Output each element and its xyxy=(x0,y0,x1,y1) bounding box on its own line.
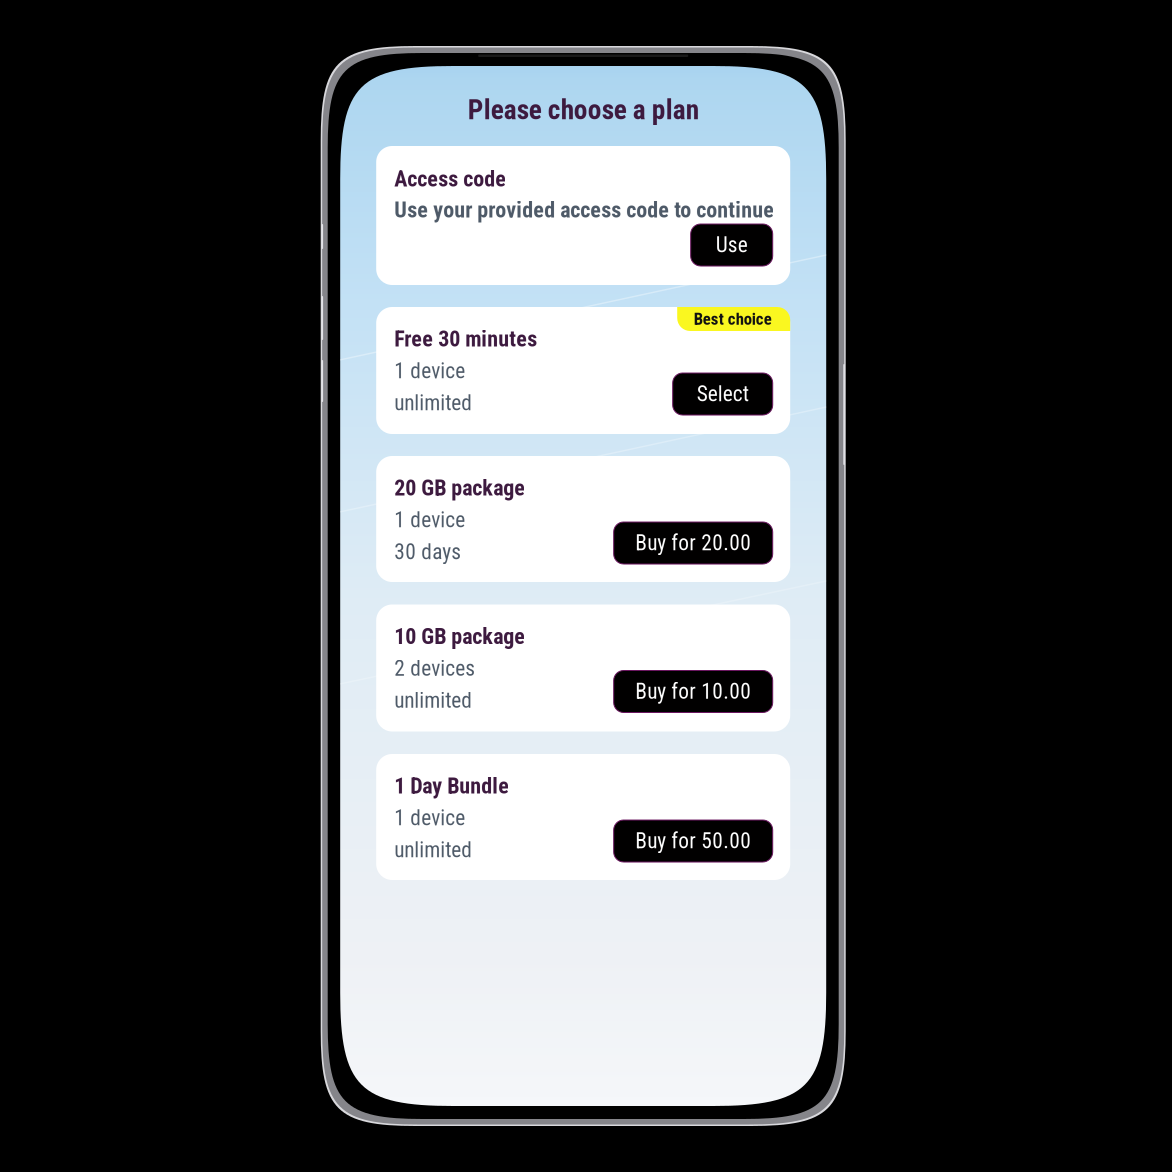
staticText: Use your provided access code to continu… xyxy=(394,197,774,223)
staticText: Buy for 10.00 xyxy=(635,679,751,704)
staticText: 20 GB package xyxy=(394,475,525,501)
button[interactable]: Use xyxy=(691,224,773,266)
staticText: Best choice xyxy=(694,309,772,329)
button[interactable]: Buy for 20.00 xyxy=(614,522,773,564)
staticText: unlimited xyxy=(394,688,472,713)
button[interactable]: Select xyxy=(673,373,773,415)
staticText: Use xyxy=(716,232,748,257)
button[interactable]: Buy for 10.00 xyxy=(614,670,773,712)
button[interactable]: Buy for 50.00 xyxy=(614,820,773,862)
staticText: 2 devices xyxy=(394,656,475,681)
staticText: Buy for 50.00 xyxy=(635,828,751,853)
staticText: Select xyxy=(697,381,749,406)
staticText: Access code xyxy=(394,166,506,192)
staticText: 1 device xyxy=(394,358,465,383)
staticText: unlimited xyxy=(394,390,472,415)
staticText: Please choose a plan xyxy=(468,94,699,126)
staticText: unlimited xyxy=(394,837,472,862)
staticText: 10 GB package xyxy=(394,624,525,649)
staticText: 1 device xyxy=(394,805,465,830)
staticText: 1 Day Bundle xyxy=(394,773,509,799)
staticText: Free 30 minutes xyxy=(394,326,537,352)
staticText: 1 device xyxy=(394,507,465,532)
staticText: 30 days xyxy=(394,539,461,564)
staticText: Buy for 20.00 xyxy=(635,530,751,555)
